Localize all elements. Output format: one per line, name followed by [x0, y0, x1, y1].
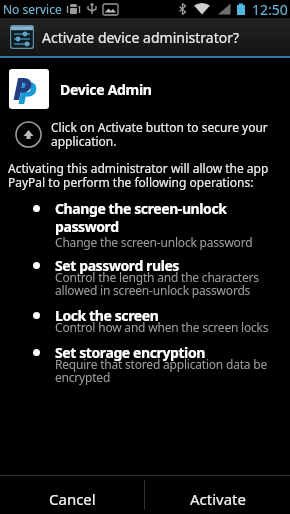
staticText: Cancel [49, 489, 96, 509]
staticText: Control the length and the characters al… [55, 269, 259, 299]
staticText: Change the screen-unlock password [55, 199, 227, 236]
staticText: Activate [190, 489, 246, 509]
button[interactable]: Cancel [0, 476, 144, 514]
staticText: Device Admin [60, 80, 152, 99]
staticText: Change the screen-unlock password [55, 234, 253, 250]
staticText: P [18, 72, 37, 109]
staticText: Control how and when the screen locks [55, 319, 269, 335]
staticText: Set password rules [55, 256, 179, 275]
staticText: Click on Activate button to secure your … [51, 119, 268, 150]
staticText: Set storage encryption [55, 343, 205, 362]
staticText: Activating this administrator will allow… [8, 160, 269, 191]
staticText: Activate device administrator? [42, 28, 240, 47]
staticText: Lock the screen [55, 306, 159, 325]
staticText: P [13, 69, 32, 108]
button[interactable]: Click on Activate button to secure your … [0, 118, 290, 150]
staticText: Require that stored application data be … [55, 356, 268, 386]
staticText: No service [3, 1, 62, 17]
button[interactable]: Activate [145, 476, 290, 514]
staticText: 12:50 [252, 0, 288, 18]
